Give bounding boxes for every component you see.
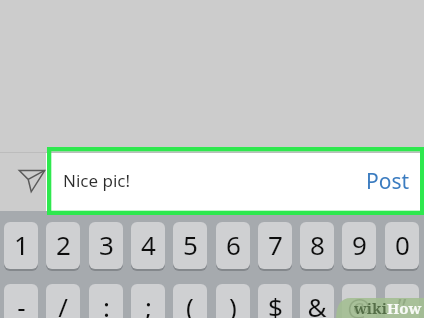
button[interactable]: Post — [352, 153, 424, 211]
staticText: ) — [229, 289, 237, 318]
staticText: ( — [186, 289, 194, 318]
button[interactable]: - — [4, 284, 38, 318]
button[interactable]: ” — [385, 284, 419, 318]
button[interactable]: Share — [0, 153, 46, 211]
staticText: @ — [347, 289, 371, 318]
staticText: $ — [268, 289, 283, 318]
button[interactable]: ) — [216, 284, 250, 318]
button[interactable]: ( — [173, 284, 207, 318]
staticText: 5 — [183, 227, 198, 262]
staticText: - — [17, 289, 26, 318]
staticText: Post — [366, 167, 410, 196]
button[interactable]: 6 — [216, 222, 250, 269]
staticText: 8 — [310, 227, 325, 262]
staticText: / — [58, 289, 68, 318]
button[interactable]: 4 — [131, 222, 165, 269]
button[interactable]: 7 — [258, 222, 292, 269]
staticText: 2 — [56, 227, 71, 262]
staticText: How — [387, 298, 422, 315]
button[interactable]: ; — [131, 284, 165, 318]
staticText: : — [103, 289, 110, 318]
staticText: 6 — [226, 227, 241, 262]
button[interactable]: Nice pic! — [46, 153, 352, 211]
button[interactable]: 1 — [4, 222, 38, 269]
staticText: 1 — [14, 227, 29, 262]
staticText: ; — [145, 289, 152, 318]
staticText: 4 — [141, 227, 156, 262]
button[interactable]: @ — [342, 284, 376, 318]
button[interactable]: / — [46, 284, 80, 318]
staticText: & — [307, 289, 327, 318]
staticText: ” — [397, 289, 407, 318]
button[interactable]: 3 — [89, 222, 123, 269]
button[interactable]: & — [300, 284, 334, 318]
button[interactable]: : — [89, 284, 123, 318]
staticText: 3 — [99, 227, 114, 262]
button[interactable]: 9 — [342, 222, 376, 269]
button[interactable]: 8 — [300, 222, 334, 269]
staticText: Nice pic! — [63, 169, 131, 192]
button[interactable]: 0 — [385, 222, 419, 269]
button[interactable]: 2 — [46, 222, 80, 269]
button[interactable]: $ — [258, 284, 292, 318]
staticText: 9 — [352, 227, 367, 262]
staticText: 7 — [268, 227, 283, 262]
staticText: 0 — [395, 227, 410, 262]
staticText: wiki — [354, 298, 387, 315]
button[interactable]: 5 — [173, 222, 207, 269]
